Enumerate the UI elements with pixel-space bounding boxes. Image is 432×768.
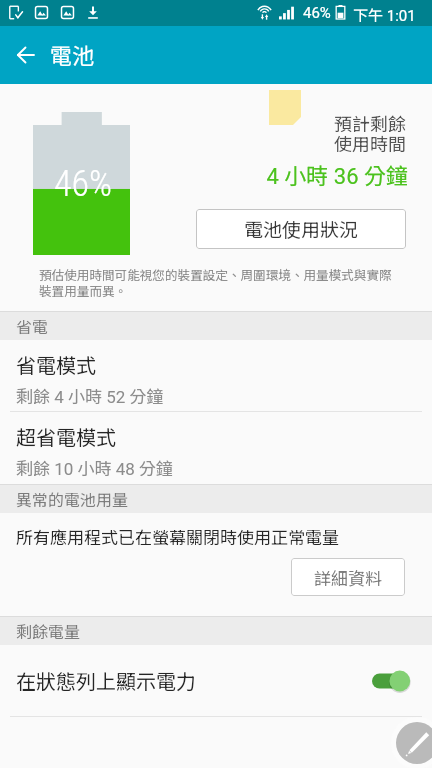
staticText: 超省電模式	[16, 422, 116, 451]
button[interactable]: Back	[4, 34, 46, 76]
staticText: 詳細資料	[314, 565, 382, 590]
staticText: 46%	[303, 4, 331, 22]
staticText: 異常的電池用量	[16, 487, 129, 510]
button[interactable]: 詳細資料	[291, 558, 405, 596]
staticText: 46%	[54, 163, 113, 205]
button[interactable]: Edit	[396, 722, 432, 764]
staticText: 剩餘 4 小時 52 分鐘	[16, 383, 164, 408]
staticText: 在狀態列上顯示電力	[16, 666, 196, 695]
button[interactable]: 在狀態列上顯示電力	[0, 645, 432, 716]
staticText: 電池	[50, 38, 95, 70]
button[interactable]: 省電模式	[0, 340, 432, 411]
staticText: 剩餘 10 小時 48 分鐘	[16, 455, 174, 480]
staticText: 預計剩餘 使用時間	[334, 110, 406, 156]
staticText: 剩餘電量	[16, 619, 81, 642]
staticText: 下午 1:01	[353, 4, 416, 26]
button[interactable]: 超省電模式	[0, 412, 432, 484]
staticText: 省電模式	[16, 350, 96, 379]
staticText: 省電	[16, 314, 49, 337]
staticText: 4 小時 36 分鐘	[0, 158, 408, 190]
staticText: 電池使用狀況	[244, 215, 359, 243]
staticText: 所有應用程式已在螢幕關閉時使用正常電量	[16, 524, 339, 549]
button[interactable]: 電池使用狀況	[196, 209, 406, 249]
staticText: 預估使用時間可能視您的裝置設定、周圍環境、用量模式與實際 裝置用量而異。	[39, 265, 392, 299]
